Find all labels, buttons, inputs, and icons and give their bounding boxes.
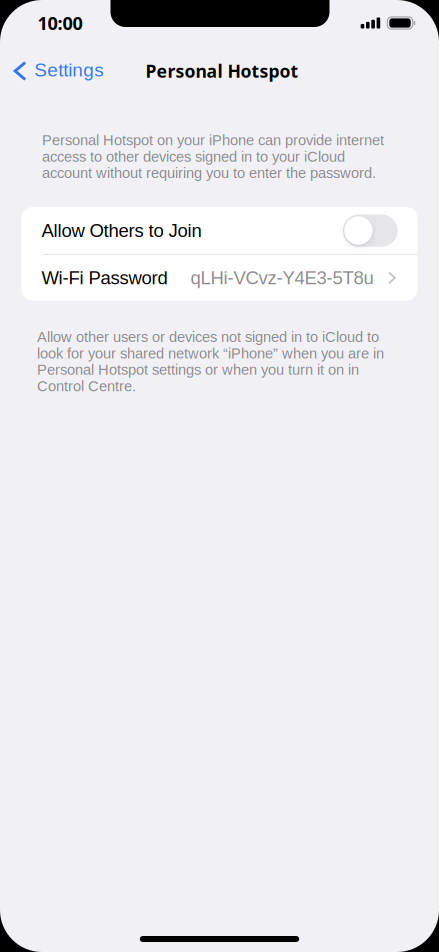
staticText: Wi-Fi Password	[41, 267, 167, 288]
staticText: Allow Others to Join	[41, 220, 201, 241]
staticText: Personal Hotspot on your iPhone can prov…	[42, 132, 384, 181]
staticText: Allow other users or devices not signed …	[37, 329, 384, 394]
button[interactable]: Allow Others to Join	[21, 207, 418, 254]
staticText: 10:00	[37, 11, 82, 35]
staticText: qLHi-VCvz-Y4E3-5T8u	[190, 267, 373, 288]
button[interactable]: Settings	[0, 51, 103, 91]
staticText: Settings	[34, 59, 103, 80]
staticText: Personal Hotspot	[145, 59, 298, 83]
button[interactable]: Wi-Fi Password	[21, 255, 418, 301]
